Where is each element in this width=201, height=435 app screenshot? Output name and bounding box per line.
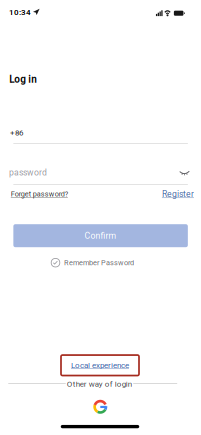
staticText: password (9, 167, 47, 178)
button[interactable]: Forget password? (9, 188, 70, 200)
button[interactable]: Local experience (61, 355, 139, 376)
staticText: +86 (10, 128, 23, 137)
staticText: Log in (9, 73, 37, 85)
button[interactable]: Remember Password (51, 257, 134, 268)
button[interactable]: Register (161, 188, 195, 200)
staticText: Remember Password (64, 258, 134, 267)
button[interactable]: Confirm (13, 224, 188, 247)
staticText: Other way of login (67, 379, 132, 389)
staticText: Confirm (85, 231, 117, 241)
staticText: Forget password? (11, 190, 68, 198)
staticText: 10:34 (9, 8, 31, 17)
staticText: Local experience (71, 361, 129, 370)
button[interactable]: Continue with Google (89, 396, 111, 418)
staticText: Register (162, 189, 194, 199)
button[interactable]: Show password (176, 166, 193, 180)
